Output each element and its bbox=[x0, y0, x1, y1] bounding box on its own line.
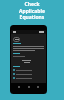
staticText: Check Applicable Equations bbox=[19, 1, 45, 20]
